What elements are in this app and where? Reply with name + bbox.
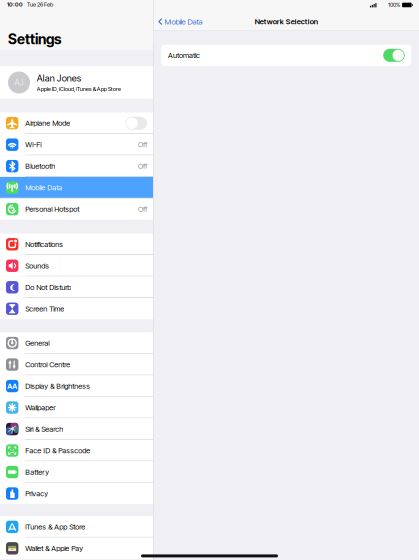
button[interactable]: Privacy bbox=[0, 483, 153, 504]
staticText: Network Selection bbox=[255, 17, 318, 26]
staticText: Airplane Mode bbox=[25, 119, 70, 128]
staticText: Mobile Data bbox=[25, 183, 62, 192]
button[interactable]: Notifications bbox=[0, 233, 153, 255]
button[interactable]: General bbox=[0, 332, 153, 354]
button[interactable]: iTunes & App Store bbox=[0, 516, 153, 538]
staticText: Bluetooth bbox=[25, 162, 55, 171]
button[interactable]: Wi-Fi bbox=[0, 134, 153, 155]
staticText: 100% bbox=[388, 1, 400, 8]
button[interactable]: Automatic bbox=[161, 45, 411, 66]
staticText: Wallpaper bbox=[25, 403, 55, 412]
staticText: AJ bbox=[14, 78, 23, 87]
button[interactable]: Sounds bbox=[0, 255, 153, 276]
staticText: Mobile Data bbox=[164, 17, 202, 26]
staticText: Privacy bbox=[25, 489, 48, 498]
staticText: Apple ID, iCloud, iTunes & App Store bbox=[37, 85, 121, 92]
staticText: 10:00 bbox=[7, 1, 23, 8]
button[interactable]: Control Centre bbox=[0, 354, 153, 375]
button[interactable]: Do Not Disturb bbox=[0, 276, 153, 298]
staticText: Display & Brightness bbox=[25, 381, 90, 390]
staticText: AA bbox=[7, 382, 17, 390]
button[interactable]: Wallpaper bbox=[0, 397, 153, 418]
button[interactable]: Bluetooth bbox=[0, 155, 153, 177]
staticText: iTunes & App Store bbox=[25, 522, 85, 531]
staticText: Sounds bbox=[25, 261, 49, 270]
staticText: Face ID & Passcode bbox=[25, 446, 90, 455]
staticText: General bbox=[25, 338, 49, 347]
staticText: Do Not Disturb bbox=[25, 283, 71, 292]
staticText: Control Centre bbox=[25, 360, 70, 369]
staticText: Settings bbox=[8, 30, 61, 48]
staticText: Alan Jones bbox=[37, 73, 81, 84]
staticText: Off bbox=[138, 162, 147, 171]
button[interactable]: Personal Hotspot bbox=[0, 198, 153, 220]
staticText: Screen Time bbox=[25, 304, 64, 313]
staticText: Off bbox=[138, 205, 147, 214]
button[interactable]: Mobile Data bbox=[0, 177, 153, 198]
button[interactable]: Battery bbox=[0, 461, 153, 483]
staticText: Battery bbox=[25, 467, 49, 476]
staticText: Notifications bbox=[25, 240, 63, 249]
staticText: Personal Hotspot bbox=[25, 205, 79, 214]
staticText: Wallet & Apple Pay bbox=[25, 544, 83, 553]
button[interactable]: Mobile Data bbox=[154, 13, 202, 30]
staticText: Off bbox=[138, 140, 147, 149]
button[interactable]: AA bbox=[0, 375, 153, 397]
button[interactable]: Screen Time bbox=[0, 298, 153, 319]
staticText: Siri & Search bbox=[25, 424, 63, 433]
staticText: Automatic bbox=[168, 51, 200, 60]
button[interactable]: Airplane Mode bbox=[0, 112, 153, 134]
staticText: Wi-Fi bbox=[25, 140, 41, 149]
button[interactable]: Siri & Search bbox=[0, 418, 153, 440]
button[interactable]: Wallet & Apple Pay bbox=[0, 538, 153, 559]
staticText: Tue 26 Feb bbox=[27, 1, 53, 8]
button[interactable]: AJ bbox=[0, 66, 153, 99]
button[interactable]: Face ID & Passcode bbox=[0, 440, 153, 461]
